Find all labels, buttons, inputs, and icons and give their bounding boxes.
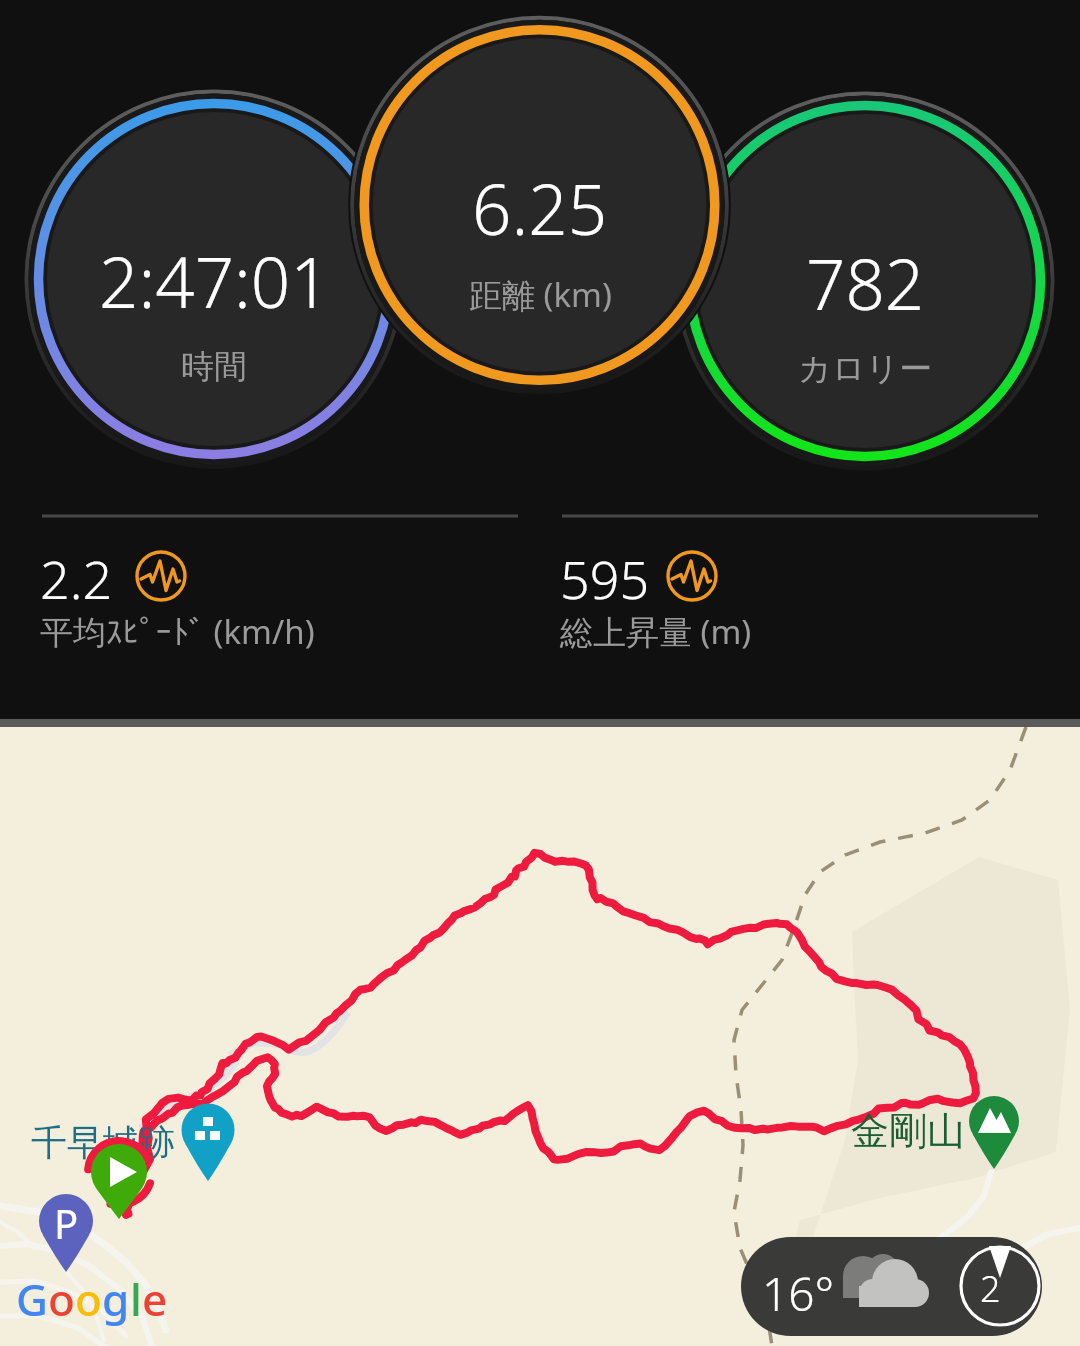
staticText: 595 <box>560 543 650 614</box>
staticText: カロリー <box>798 348 933 390</box>
staticText: 総上昇量 (m) <box>560 609 752 654</box>
staticText: 6.25 <box>472 161 608 255</box>
staticText: 16° <box>762 1262 835 1325</box>
staticText: 千早城跡 <box>31 1120 175 1165</box>
staticText: l <box>130 1269 142 1329</box>
staticText: 782 <box>806 236 925 330</box>
staticText: o <box>48 1269 75 1329</box>
staticText: 2 <box>980 1264 1001 1313</box>
button[interactable]: 6.25 距離 (km) <box>364 30 715 381</box>
staticText: g <box>102 1269 130 1329</box>
button[interactable]: 総上昇量 595 m <box>560 530 1038 660</box>
staticText: 距離 (km) <box>469 272 612 317</box>
staticText: e <box>142 1269 168 1329</box>
staticText: 金剛山 <box>851 1107 965 1155</box>
staticText: 平均ｽﾋﾟｰﾄﾞ (km/h) <box>40 609 315 654</box>
staticText: 2.2 <box>40 543 113 614</box>
staticText: G <box>16 1269 48 1329</box>
button[interactable]: 2:47:01 時間 <box>39 104 390 455</box>
button[interactable]: 平均スピード 2.2 km/h <box>40 530 518 660</box>
button[interactable]: 782 カロリー <box>690 106 1041 457</box>
button[interactable]: Route map <box>0 727 1080 1346</box>
staticText: o <box>75 1269 102 1329</box>
staticText: P <box>54 1196 79 1246</box>
staticText: 2:47:01 <box>99 234 330 328</box>
staticText: 時間 <box>181 346 247 388</box>
button[interactable]: Weather 16 degrees <box>741 1237 1042 1336</box>
